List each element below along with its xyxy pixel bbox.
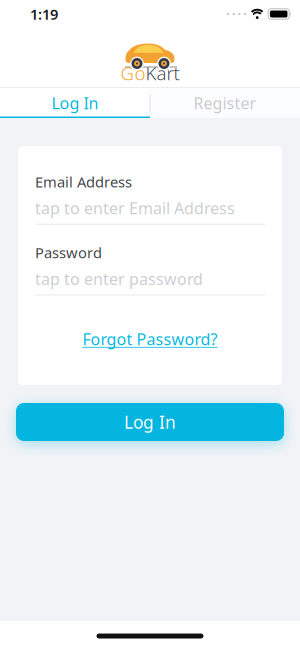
staticText: Go	[120, 61, 145, 85]
button[interactable]: Log In	[16, 403, 284, 441]
staticText: Register	[193, 92, 256, 114]
staticText: Password	[35, 243, 102, 262]
button[interactable]: tap to enter Email Address	[18, 191, 265, 225]
button[interactable]: Register	[150, 88, 300, 118]
staticText: Email Address	[35, 172, 132, 191]
staticText: 1:19	[30, 4, 58, 24]
staticText: Forgot Password?	[82, 328, 217, 350]
staticText: Log In	[124, 410, 176, 433]
staticText: tap to enter Email Address	[35, 197, 235, 219]
staticText: Log In	[51, 92, 98, 114]
button[interactable]: Forgot Password?	[82, 328, 217, 350]
button[interactable]: Log In	[0, 88, 150, 118]
staticText: tap to enter password	[35, 268, 203, 289]
staticText: Kart	[145, 61, 179, 85]
button[interactable]: tap to enter password	[18, 262, 265, 295]
